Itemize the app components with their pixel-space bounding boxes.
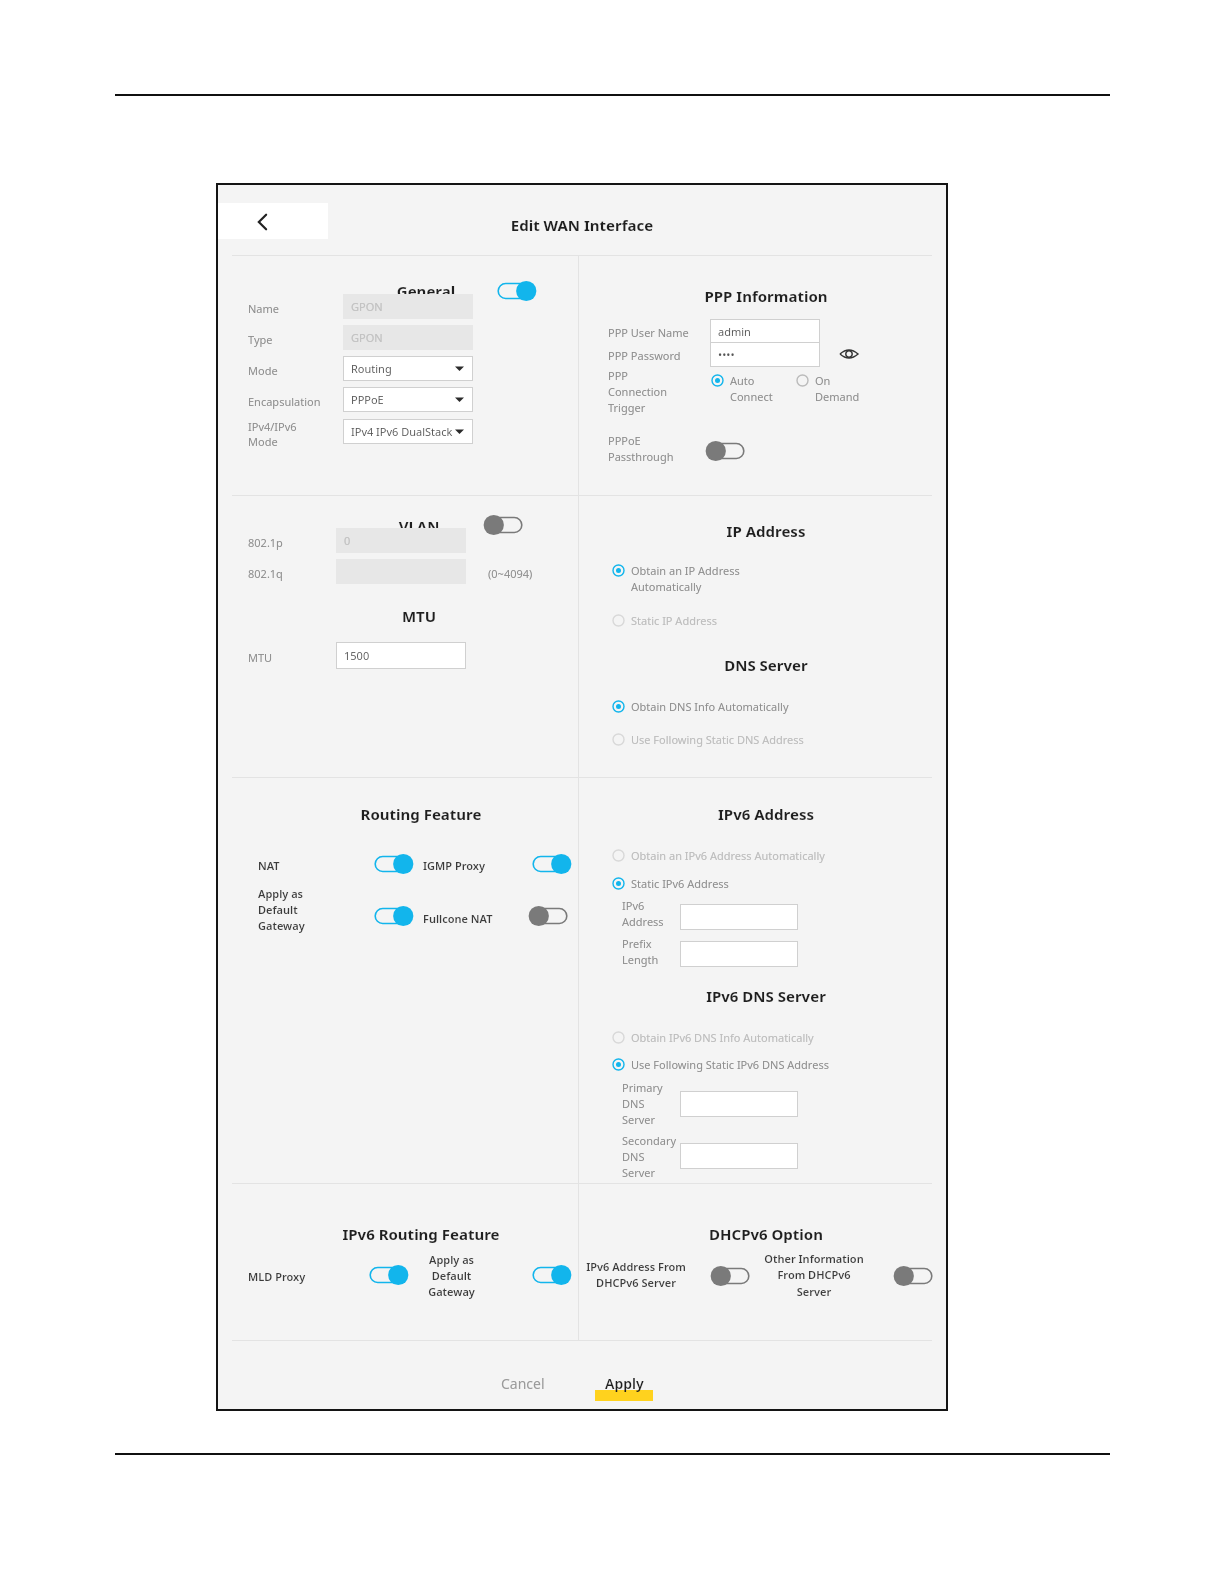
staticText: Use Following Static DNS Address: [631, 732, 851, 747]
staticText: Obtain an IP Address Automatically: [631, 563, 781, 594]
button[interactable]: Obtain IPv6 DNS Info Automatically: [612, 1030, 861, 1045]
staticText: IPv6 Address From DHCPv6 Server: [586, 1259, 686, 1291]
button[interactable]: [680, 1091, 798, 1117]
staticText: IP Address: [616, 521, 916, 541]
staticText: Apply as Default Gateway: [258, 886, 305, 933]
staticText: (0~4094): [488, 566, 533, 581]
staticText: Obtain DNS Info Automatically: [631, 699, 831, 714]
staticText: Obtain an IPv6 Address Automatically: [631, 848, 861, 863]
staticText: IPv6 Address: [616, 804, 916, 824]
staticText: PPP Connection Trigger: [608, 368, 667, 415]
staticText: PPPoE: [351, 392, 384, 407]
staticText: PPP Information: [616, 286, 916, 306]
staticText: DNS Server: [616, 655, 916, 675]
staticText: Encapsulation: [248, 394, 321, 409]
button[interactable]: Use Following Static IPv6 DNS Address: [612, 1057, 861, 1072]
staticText: Obtain IPv6 DNS Info Automatically: [631, 1030, 861, 1045]
staticText: IPv6 DNS Server: [616, 986, 916, 1006]
staticText: 802.1q: [248, 566, 283, 581]
staticText: PPP User Name: [608, 325, 689, 340]
button[interactable]: Auto Connect: [711, 373, 792, 404]
staticText: Secondary DNS Server: [622, 1133, 677, 1180]
staticText: Apply as Default Gateway: [428, 1252, 475, 1299]
button[interactable]: Apply: [584, 1368, 664, 1398]
staticText: Routing: [351, 361, 392, 376]
button[interactable]: Other Information From DHCPv6 Server: [894, 1265, 936, 1287]
staticText: MTU: [248, 650, 273, 665]
button[interactable]: Routing: [343, 356, 473, 381]
button[interactable]: NAT: [371, 853, 413, 875]
button[interactable]: Obtain an IPv6 Address Automatically: [612, 848, 861, 863]
staticText: Other Information From DHCPv6 Server: [764, 1251, 864, 1300]
staticText: Static IP Address: [631, 613, 811, 628]
button[interactable]: Show password: [838, 343, 860, 365]
button[interactable]: Cancel: [478, 1368, 568, 1398]
staticText: GPON: [351, 299, 383, 314]
button[interactable]: MLD Proxy: [366, 1264, 408, 1286]
staticText: IPv4 IPv6 DualStack: [351, 424, 453, 439]
button[interactable]: admin: [710, 319, 820, 344]
staticText: Mode: [248, 363, 278, 378]
staticText: PPP Password: [608, 348, 681, 363]
button[interactable]: GPON: [343, 294, 473, 319]
staticText: Primary DNS Server: [622, 1080, 663, 1127]
staticText: 0: [344, 533, 351, 548]
button[interactable]: Obtain DNS Info Automatically: [612, 699, 831, 714]
button[interactable]: 1500: [336, 642, 466, 669]
button[interactable]: [680, 1143, 798, 1169]
staticText: MTU: [364, 606, 474, 626]
button[interactable]: IPv6 Address From DHCPv6 Server: [711, 1265, 753, 1287]
staticText: DHCPv6 Option: [616, 1224, 916, 1244]
staticText: IGMP Proxy: [423, 858, 485, 873]
button[interactable]: Back: [250, 209, 276, 235]
staticText: On Demand: [815, 373, 877, 404]
staticText: IPv6 Address: [622, 898, 664, 929]
button[interactable]: Static IPv6 Address: [612, 876, 821, 891]
staticText: Auto Connect: [730, 373, 792, 404]
button[interactable]: Use Following Static DNS Address: [612, 732, 851, 747]
staticText: IPv6 Routing Feature: [316, 1224, 526, 1244]
staticText: Static IPv6 Address: [631, 876, 821, 891]
staticText: Use Following Static IPv6 DNS Address: [631, 1057, 861, 1072]
button[interactable]: VLAN: [484, 514, 526, 536]
staticText: IPv4/IPv6 Mode: [248, 419, 297, 449]
button[interactable]: [680, 904, 798, 930]
staticText: Cancel: [501, 1374, 545, 1393]
staticText: MLD Proxy: [248, 1269, 306, 1284]
staticText: NAT: [258, 858, 280, 873]
staticText: 1500: [344, 648, 370, 663]
button[interactable]: Obtain an IP Address Automatically: [612, 563, 781, 594]
staticText: PPPoE Passthrough: [608, 433, 674, 464]
staticText: admin: [718, 324, 751, 339]
button[interactable]: Static IP Address: [612, 613, 811, 628]
staticText: VLAN: [364, 516, 474, 536]
button[interactable]: IPv4 IPv6 DualStack: [343, 419, 473, 444]
button[interactable]: Apply as Default Gateway IPv6: [529, 1264, 571, 1286]
button[interactable]: [680, 941, 798, 967]
staticText: 802.1p: [248, 535, 283, 550]
button[interactable]: Fullcone NAT: [529, 905, 571, 927]
staticText: Name: [248, 301, 280, 316]
staticText: Edit WAN Interface: [216, 215, 948, 235]
staticText: General: [366, 281, 486, 301]
staticText: Routing Feature: [336, 804, 506, 824]
button[interactable]: General enabled: [494, 280, 536, 302]
staticText: Type: [248, 332, 273, 347]
button[interactable]: Apply as Default Gateway: [371, 905, 413, 927]
staticText: ••••: [718, 347, 735, 362]
staticText: Apply: [605, 1374, 644, 1393]
button[interactable]: On Demand: [796, 373, 877, 404]
staticText: GPON: [351, 330, 383, 345]
button[interactable]: PPPoE: [343, 387, 473, 412]
staticText: Fullcone NAT: [423, 911, 493, 926]
button[interactable]: IGMP Proxy: [529, 853, 571, 875]
button[interactable]: PPPoE Passthrough: [706, 440, 748, 462]
button[interactable]: GPON: [343, 325, 473, 350]
button[interactable]: ••••: [710, 342, 820, 367]
staticText: Prefix Length: [622, 936, 659, 967]
